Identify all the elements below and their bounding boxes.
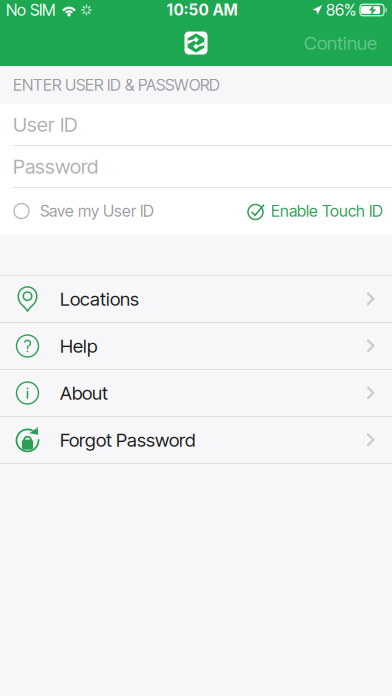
button[interactable]: Continue: [289, 22, 392, 64]
staticText: Enable Touch ID: [271, 201, 383, 221]
staticText: No SIM: [6, 0, 56, 20]
staticText: 10:50 AM: [166, 1, 237, 19]
button[interactable]: Password: [0, 146, 392, 187]
staticText: ENTER USER ID & PASSWORD: [13, 75, 220, 95]
staticText: Password: [13, 154, 98, 179]
staticText: Locations: [60, 288, 139, 310]
button[interactable]: User ID: [0, 104, 392, 145]
staticText: User ID: [13, 112, 77, 137]
staticText: 86%: [326, 0, 356, 20]
staticText: Forgot Password: [60, 429, 195, 451]
button[interactable]: Enable Touch ID: [248, 189, 383, 233]
button[interactable]: Save my User ID: [14, 189, 154, 233]
staticText: Help: [60, 335, 97, 357]
staticText: About: [60, 382, 108, 404]
button[interactable]: Help: [0, 323, 392, 370]
button[interactable]: Forgot Password: [0, 417, 392, 464]
button[interactable]: About: [0, 370, 392, 417]
staticText: Save my User ID: [40, 201, 154, 221]
button[interactable]: Locations: [0, 276, 392, 323]
staticText: Continue: [304, 32, 377, 54]
